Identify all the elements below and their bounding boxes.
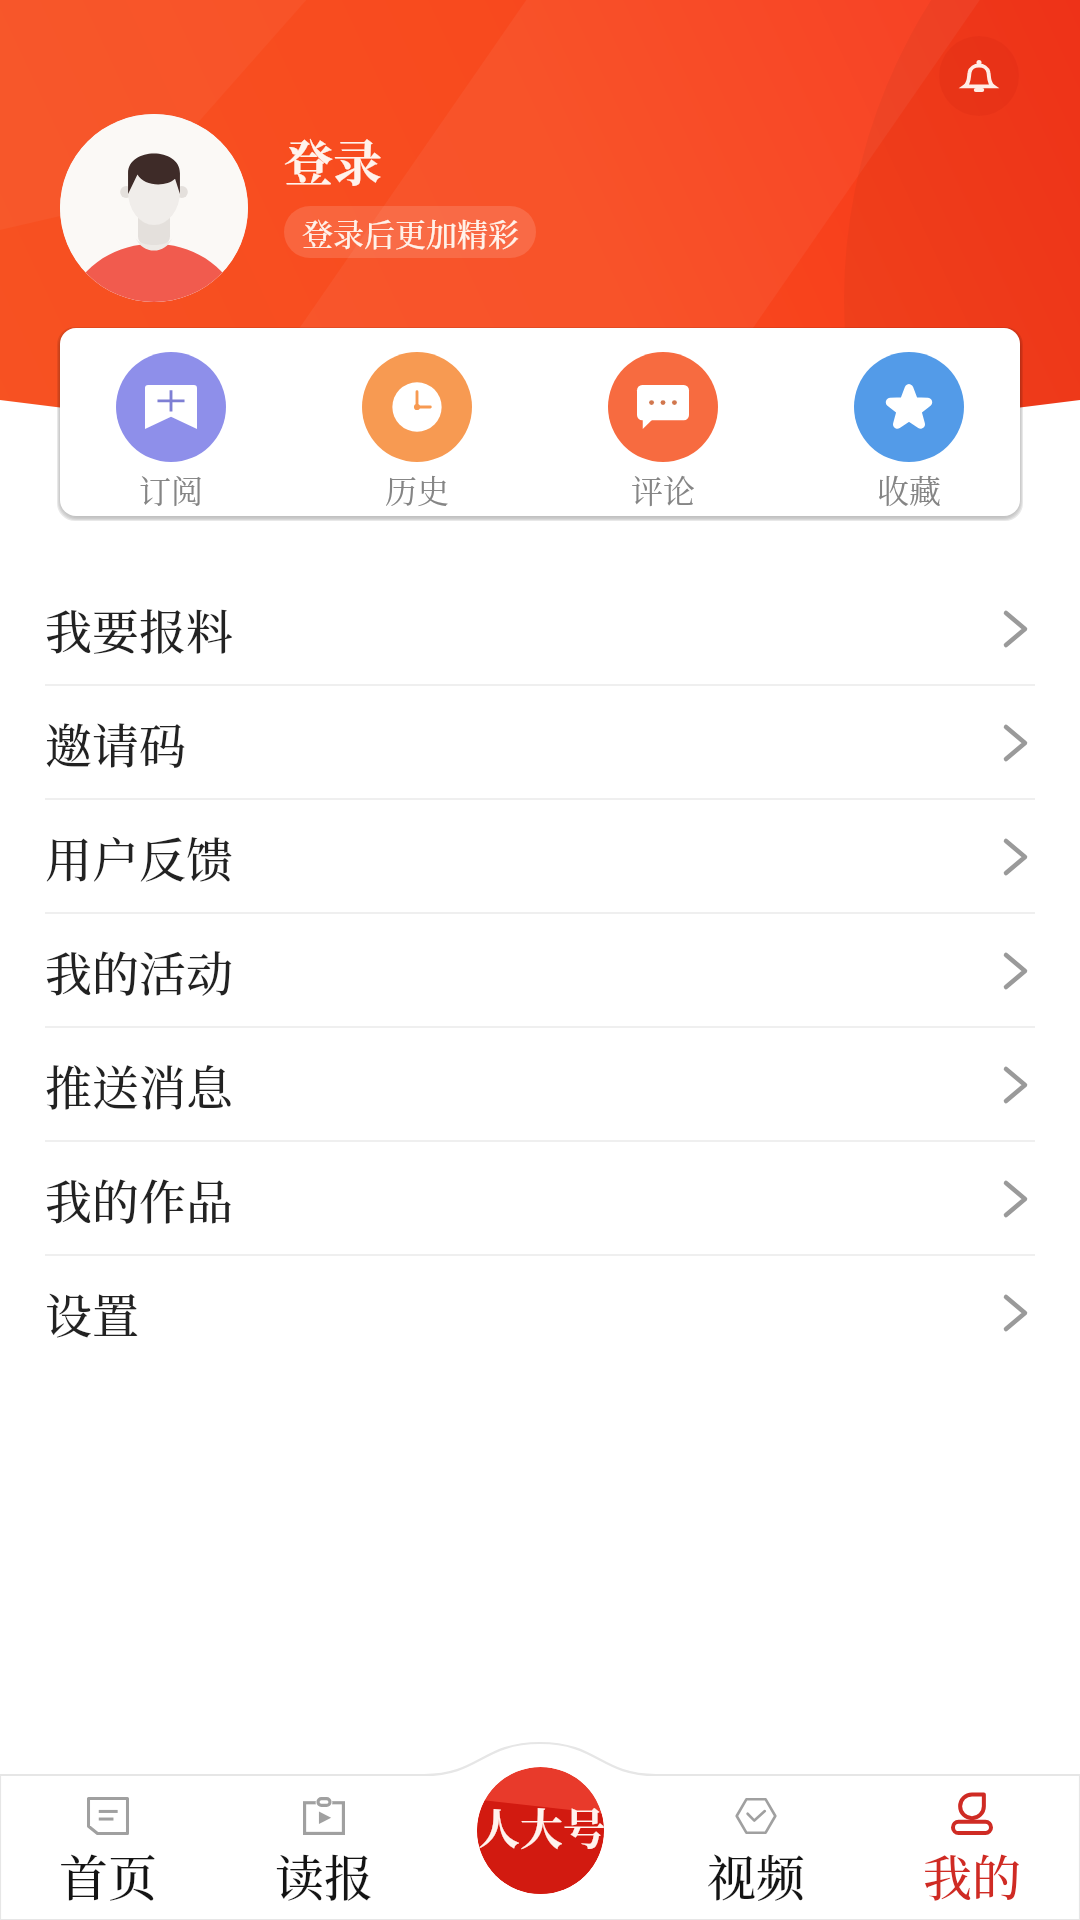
staticText: 评论 bbox=[631, 466, 696, 512]
button[interactable]: 我的活动 bbox=[0, 914, 1080, 1028]
staticText: 视频 bbox=[707, 1840, 806, 1910]
staticText: 收藏 bbox=[877, 466, 942, 512]
button[interactable] bbox=[60, 114, 248, 302]
staticText: 用户反馈 bbox=[45, 823, 233, 891]
button[interactable]: 登录后更加精彩 bbox=[284, 206, 536, 258]
staticText: 我的作品 bbox=[45, 1165, 233, 1233]
button[interactable]: 我要报料 bbox=[0, 572, 1080, 686]
button[interactable]: 人大号 bbox=[477, 1767, 604, 1894]
staticText: 我要报料 bbox=[45, 595, 233, 663]
staticText: 邀请码 bbox=[45, 709, 186, 777]
staticText: 读报 bbox=[275, 1840, 374, 1910]
button[interactable]: 设置 bbox=[0, 1256, 1080, 1370]
button[interactable]: 我的 bbox=[864, 1735, 1080, 1920]
staticText: 登录后更加精彩 bbox=[302, 210, 519, 255]
staticText: 订阅 bbox=[139, 466, 204, 512]
button[interactable]: 邀请码 bbox=[0, 686, 1080, 800]
staticText: 人大号 bbox=[477, 1796, 604, 1858]
button[interactable]: 用户反馈 bbox=[0, 800, 1080, 914]
button[interactable]: 通知 bbox=[939, 36, 1019, 116]
button[interactable]: 历史 bbox=[306, 328, 528, 516]
button[interactable]: 视频 bbox=[648, 1735, 864, 1920]
staticText: 推送消息 bbox=[45, 1051, 233, 1119]
staticText: 设置 bbox=[45, 1279, 139, 1347]
button[interactable]: 收藏 bbox=[798, 328, 1020, 516]
staticText: 历史 bbox=[385, 466, 450, 512]
staticText: 登录 bbox=[284, 125, 383, 195]
button[interactable]: 首页 bbox=[0, 1735, 216, 1920]
button[interactable]: 读报 bbox=[216, 1735, 432, 1920]
button[interactable]: 订阅 bbox=[60, 328, 282, 516]
staticText: 首页 bbox=[59, 1840, 158, 1910]
staticText: 我的活动 bbox=[45, 937, 233, 1005]
button[interactable]: 我的作品 bbox=[0, 1142, 1080, 1256]
button[interactable]: 推送消息 bbox=[0, 1028, 1080, 1142]
button[interactable]: 评论 bbox=[552, 328, 774, 516]
staticText: 我的 bbox=[923, 1840, 1022, 1910]
